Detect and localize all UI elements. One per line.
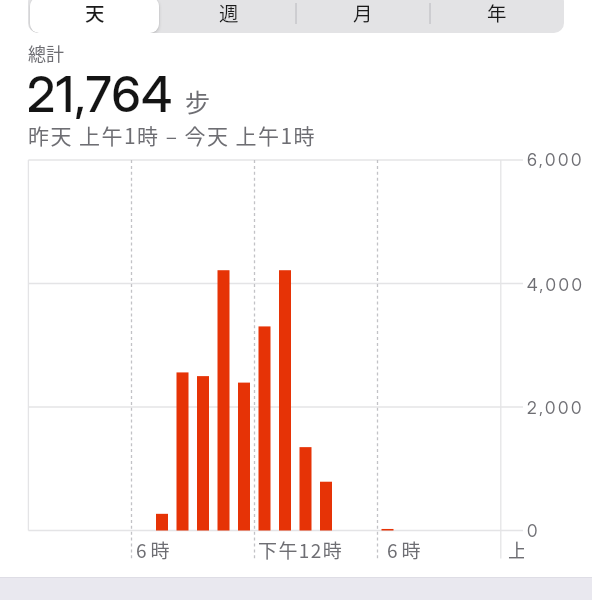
- button[interactable]: 月: [296, 0, 430, 33]
- staticText: 總計: [28, 40, 64, 66]
- staticText: 4,000: [527, 275, 585, 296]
- staticText: 年: [487, 0, 507, 26]
- staticText: 天: [85, 0, 105, 26]
- staticText: 上午12時: [508, 536, 524, 562]
- staticText: 昨天 上午1時 – 今天 上午1時: [28, 120, 317, 150]
- staticText: 步: [185, 83, 211, 119]
- staticText: 6時: [387, 536, 527, 564]
- staticText: 下午12時: [258, 536, 398, 564]
- button[interactable]: 年: [430, 0, 564, 33]
- button[interactable]: 週: [162, 0, 296, 33]
- button[interactable]: Hourly step count chart: [0, 0, 592, 600]
- staticText: 21,764: [27, 65, 173, 124]
- staticText: 6時: [136, 536, 276, 564]
- staticText: 月: [353, 0, 373, 26]
- staticText: 6,000: [527, 150, 585, 171]
- staticText: 2,000: [527, 398, 585, 419]
- staticText: 0: [527, 521, 541, 542]
- staticText: 週: [219, 0, 239, 26]
- button[interactable]: 天: [28, 0, 162, 33]
